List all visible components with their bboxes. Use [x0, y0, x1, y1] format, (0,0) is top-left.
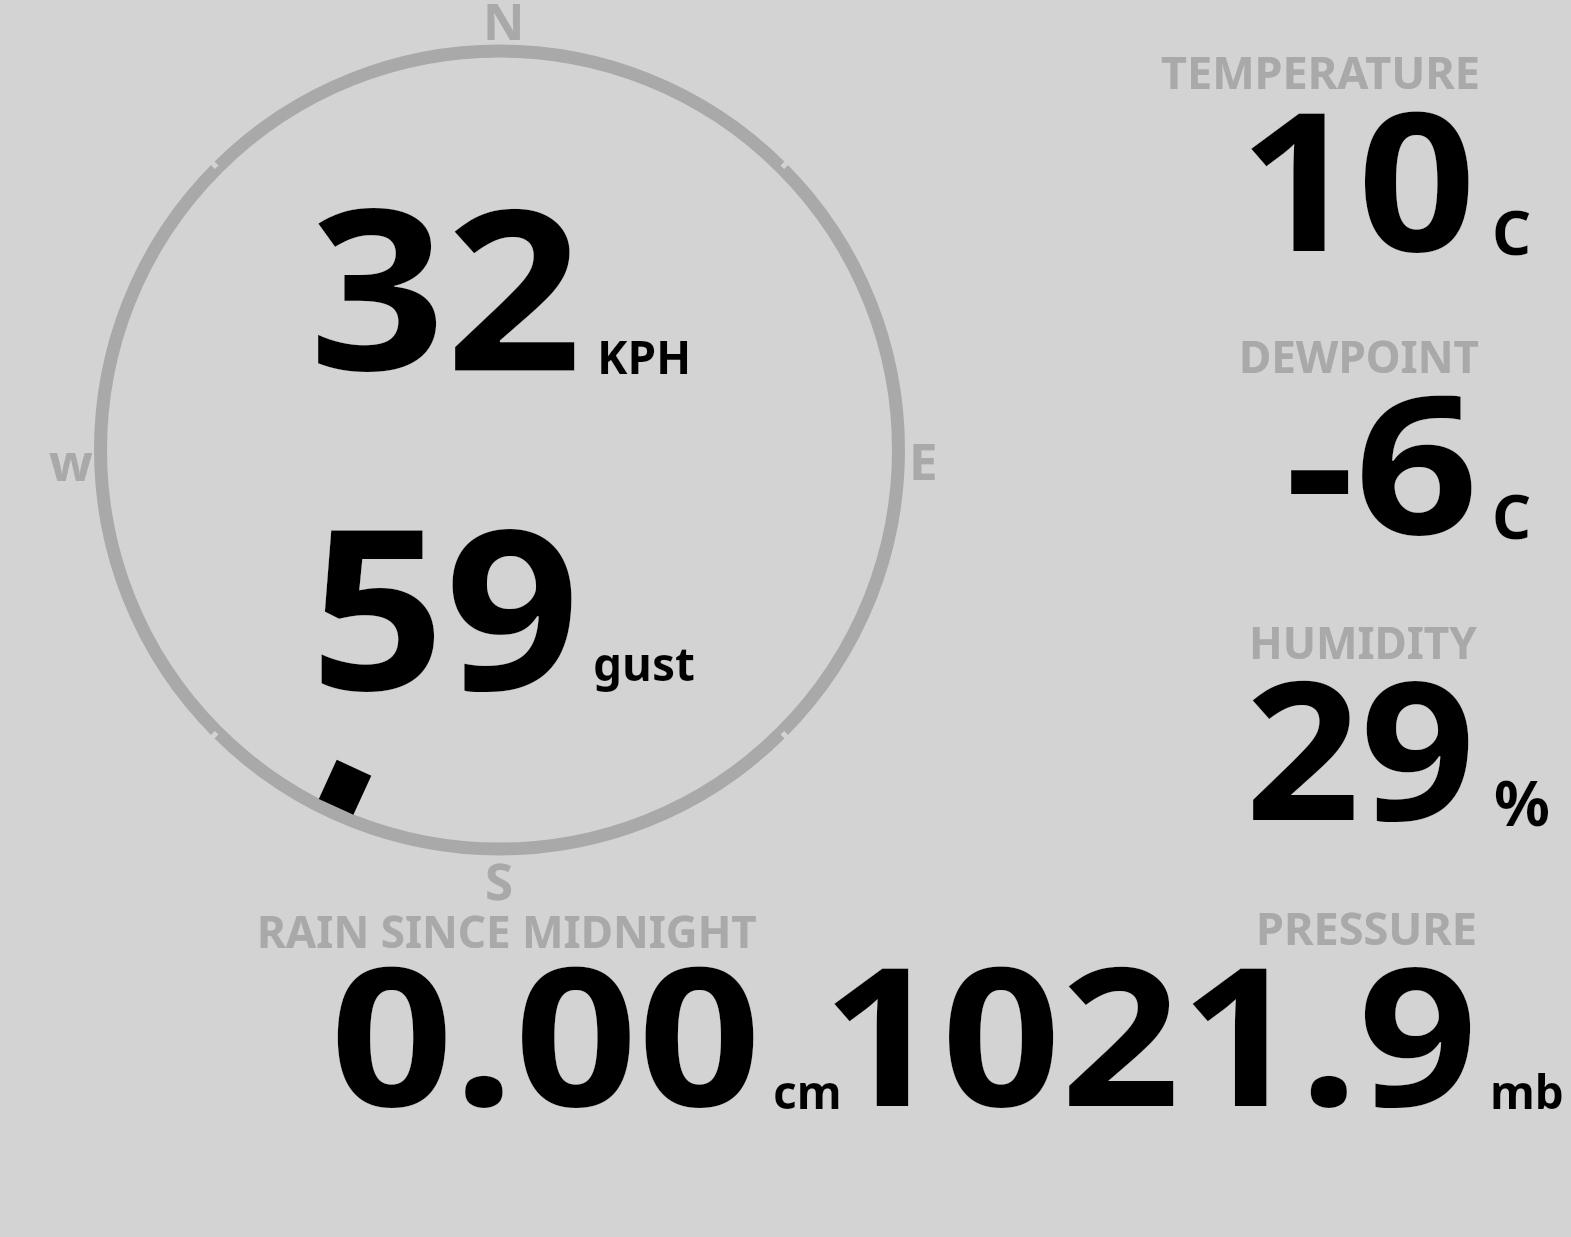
staticText: HUMIDITY	[1249, 612, 1477, 672]
staticText: -6	[1285, 329, 1479, 591]
button[interactable]: Rain since midnight 0.00 centimetres	[240, 895, 850, 1125]
staticText: %	[1494, 760, 1550, 844]
button[interactable]: Humidity 29 percent	[1140, 605, 1565, 885]
staticText: w	[49, 426, 93, 495]
staticText: 32	[309, 132, 583, 436]
staticText: KPH	[597, 325, 692, 388]
staticText: C	[1492, 474, 1532, 557]
button[interactable]: Wind gust 59 KPH	[100, 440, 900, 850]
staticText: PRESSURE	[1256, 897, 1477, 958]
staticText: C	[1492, 190, 1532, 273]
staticText: RAIN SINCE MIDNIGHT	[257, 901, 757, 961]
button[interactable]: Dewpoint minus 6 degrees Celsius	[1140, 320, 1565, 600]
staticText: TEMPERATURE	[1161, 41, 1480, 102]
staticText: E	[909, 425, 938, 494]
staticText: 10	[1239, 46, 1477, 308]
staticText: 29	[1245, 615, 1476, 877]
staticText: gust	[593, 632, 696, 695]
staticText: 0.00	[330, 901, 762, 1163]
staticText: 59	[310, 452, 581, 756]
staticText: DEWPOINT	[1239, 326, 1479, 386]
staticText: N	[483, 0, 525, 54]
button[interactable]: Pressure 1021.9 millibars	[855, 890, 1565, 1125]
staticText: 1021.9	[822, 901, 1478, 1163]
staticText: mb	[1490, 1060, 1564, 1123]
staticText: S	[485, 845, 514, 914]
staticText: cm	[773, 1060, 842, 1123]
button[interactable]: Temperature 10 degrees Celsius	[1140, 40, 1565, 310]
button[interactable]: Wind speed 32 KPH	[100, 50, 900, 440]
